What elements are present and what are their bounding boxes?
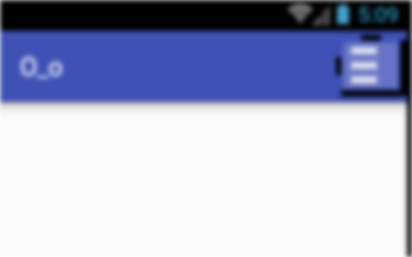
button[interactable]: List view [343,42,398,88]
staticText: 5:09 [358,3,399,28]
other: Mobile signal [312,5,330,25]
other: Wi-Fi [288,4,313,23]
other: Battery [337,4,349,24]
staticText: O_o [20,53,63,82]
button[interactable]: O_o [20,44,63,90]
